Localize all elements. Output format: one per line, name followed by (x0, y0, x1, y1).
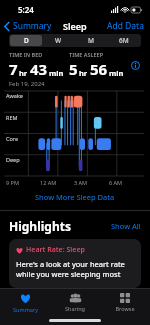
button[interactable]: Summary (0, 289, 50, 316)
button[interactable]: M (74, 35, 107, 46)
staticText: Sharing (65, 305, 85, 312)
staticText: 56 (90, 59, 108, 79)
staticText: Heart Rate: Sleep (26, 245, 85, 255)
staticText: Sleep (63, 20, 87, 32)
button[interactable]: Heart Rate: Sleep (9, 239, 141, 288)
staticText: 9 PM (6, 179, 19, 186)
staticText: REM (6, 114, 18, 121)
staticText: TIME IN BED (9, 51, 43, 58)
staticText: 12 AM (40, 179, 57, 186)
button[interactable]: Show More Sleep Data (33, 190, 117, 204)
button[interactable]: Show All (111, 221, 141, 231)
button[interactable]: 6M (107, 35, 140, 46)
staticText: Feb 19, 2024 (9, 80, 45, 88)
staticText: M (88, 36, 94, 45)
staticText: Highlights (9, 218, 111, 234)
staticText: W (55, 36, 62, 45)
button[interactable]: Info (129, 59, 141, 71)
staticText: Browse (115, 305, 135, 312)
button[interactable]: Browse (100, 289, 150, 316)
staticText: Awake (6, 92, 23, 99)
staticText: hr (19, 68, 28, 78)
staticText: TIME ASLEEP (69, 51, 104, 58)
staticText: 6M (119, 36, 129, 45)
staticText: Summary (13, 20, 52, 32)
staticText: 43 (30, 59, 48, 79)
button[interactable]: Sharing (50, 289, 100, 316)
staticText: min (49, 68, 64, 78)
staticText: 5 (69, 59, 78, 79)
staticText: min (109, 68, 124, 78)
button[interactable]: W (42, 35, 74, 46)
staticText: D (24, 36, 29, 45)
button[interactable]: Summary (4, 20, 52, 32)
staticText: Core (6, 135, 19, 142)
staticText: Summary (13, 306, 38, 313)
staticText: Here's a look at your heart rate while y… (16, 259, 134, 282)
button[interactable]: D (10, 35, 42, 46)
staticText: Deep (6, 156, 20, 163)
staticText: 5:24 (18, 4, 34, 15)
staticText: 6 AM (109, 179, 123, 186)
button[interactable]: Add Data (107, 20, 144, 32)
staticText: hr (79, 68, 88, 78)
staticText: 3 AM (74, 179, 88, 186)
staticText: 7 (9, 59, 18, 79)
